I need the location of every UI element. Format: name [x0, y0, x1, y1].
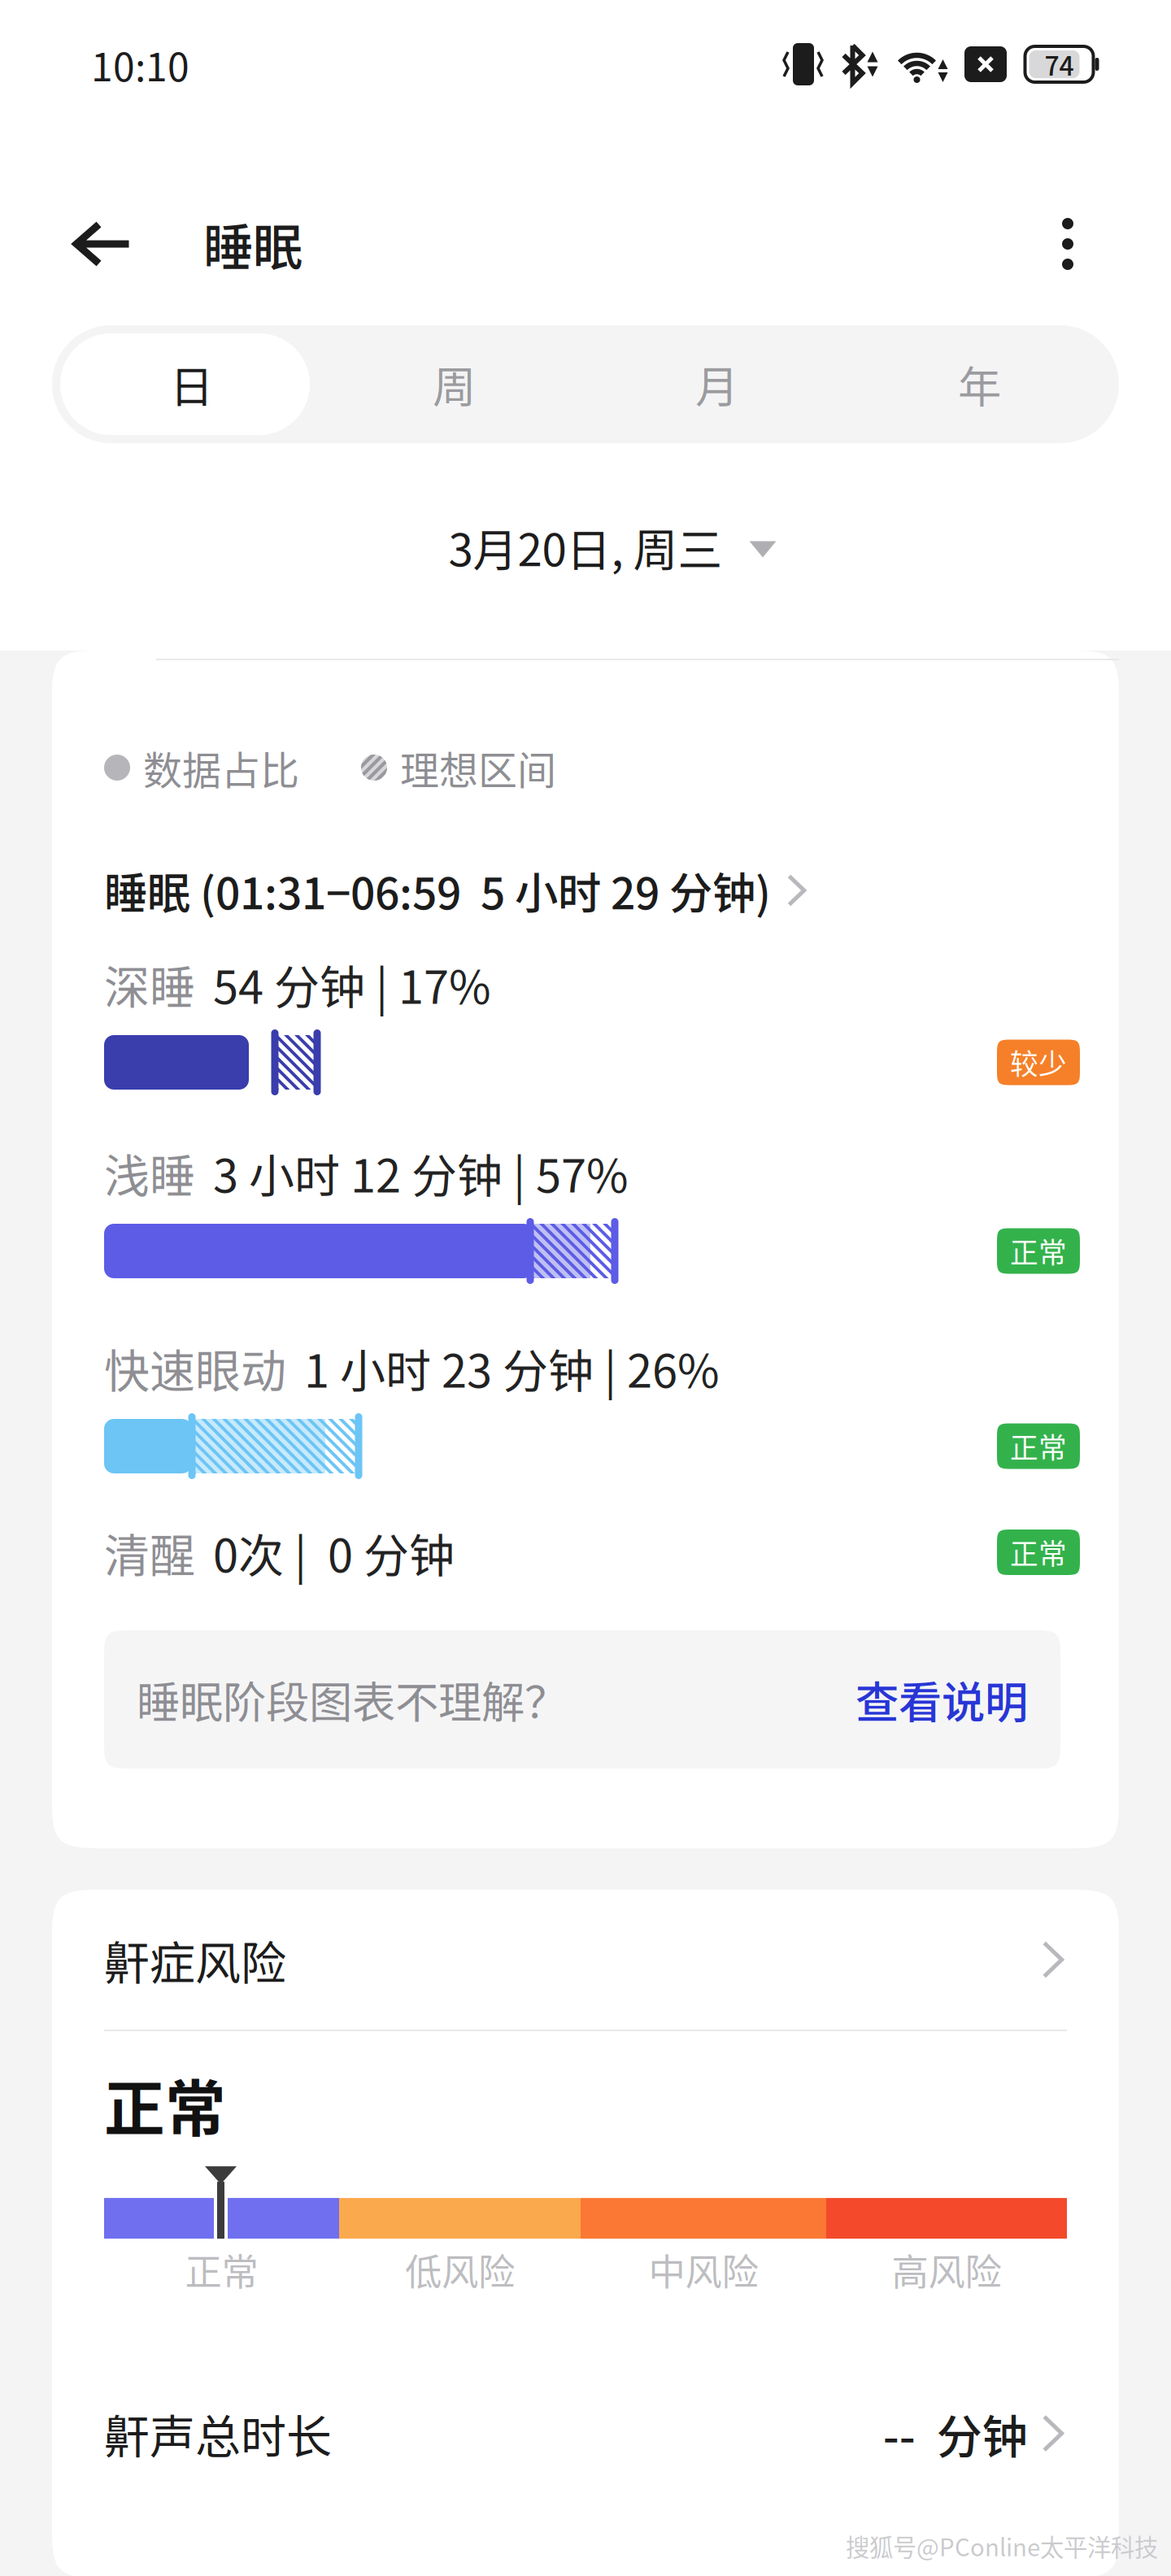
staticText: 搜狐号@PConline太平洋科技: [846, 2529, 1158, 2563]
staticText: 理想区间: [400, 739, 556, 796]
staticText: 年: [958, 353, 1001, 416]
staticText: 正常: [104, 2060, 226, 2148]
button[interactable]: 鼾声总时长: [104, 2289, 1067, 2576]
staticText: 鼾症风险: [104, 1927, 286, 1993]
staticText: 高风险: [892, 2243, 1001, 2296]
staticText: 查看说明: [855, 1668, 1028, 1731]
button[interactable]: More options: [1015, 191, 1121, 297]
staticText: 54 分钟 | 17%: [213, 951, 491, 1017]
button[interactable]: 日: [60, 333, 323, 435]
button[interactable]: 正常: [997, 1228, 1080, 1274]
staticText: 鼾声总时长: [104, 2400, 332, 2466]
staticText: 正常: [1010, 1532, 1067, 1573]
staticText: 清醒: [104, 1519, 195, 1585]
staticText: 74: [1045, 45, 1074, 83]
staticText: 睡眠阶段图表不理解？: [137, 1668, 568, 1731]
staticText: 睡眠: [203, 208, 303, 280]
staticText: 10:10: [91, 36, 189, 92]
button[interactable]: Back: [47, 189, 158, 299]
staticText: 数据占比: [143, 739, 299, 796]
button[interactable]: 3月20日, 周三: [0, 443, 1171, 651]
staticText: 3 小时 12 分钟 | 57%: [213, 1140, 629, 1206]
button[interactable]: 月: [585, 333, 848, 435]
staticText: 深睡: [104, 951, 195, 1017]
staticText: 中风险: [649, 2243, 758, 2296]
staticText: 睡眠 (01:31−06:59 5 小时 29 分钟): [104, 859, 771, 922]
button[interactable]: 正常: [997, 1423, 1080, 1469]
button[interactable]: 正常: [997, 1529, 1080, 1575]
staticText: 快速眼动: [104, 1335, 286, 1401]
staticText: -- 分钟: [883, 2400, 1028, 2466]
button[interactable]: 较少: [997, 1040, 1080, 1085]
button[interactable]: 周: [323, 333, 585, 435]
staticText: 低风险: [405, 2243, 515, 2296]
staticText: 0次 | 0 分钟: [213, 1519, 455, 1585]
staticText: 周: [433, 353, 476, 416]
staticText: 1 小时 23 分钟 | 26%: [304, 1335, 720, 1401]
staticText: 正常: [1010, 1426, 1067, 1467]
staticText: 3月20日, 周三: [448, 515, 723, 579]
staticText: 较少: [1010, 1042, 1067, 1083]
button[interactable]: 睡眠 (01:31−06:59 5 小时 29 分钟): [104, 867, 1080, 914]
staticText: 日: [170, 353, 213, 416]
staticText: 浅睡: [104, 1140, 195, 1206]
button[interactable]: 鼾症风险: [104, 1890, 1067, 2030]
button[interactable]: 查看说明: [855, 1668, 1028, 1731]
staticText: 正常: [1010, 1231, 1067, 1271]
staticText: 正常: [185, 2243, 258, 2296]
staticText: 月: [695, 353, 738, 416]
button[interactable]: 年: [848, 333, 1111, 435]
